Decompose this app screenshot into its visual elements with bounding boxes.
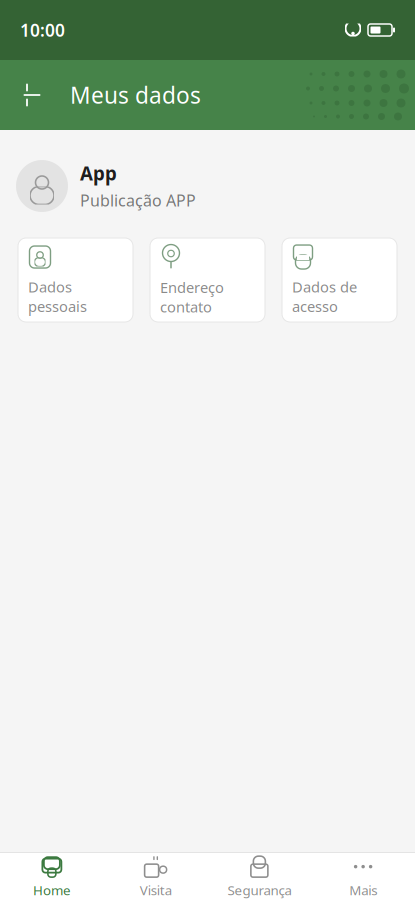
staticText: Endereço contato <box>160 277 224 316</box>
staticText: Segurança <box>227 881 291 899</box>
staticText: Dados de acesso <box>292 277 357 316</box>
staticText: Dados pessoais <box>28 277 87 316</box>
staticText: 10:00 <box>20 18 65 41</box>
staticText: Mais <box>349 881 377 899</box>
button[interactable]: Mais <box>311 848 415 900</box>
button[interactable]: Endereço contato <box>150 238 265 322</box>
staticText: Publicação APP <box>80 190 196 211</box>
staticText: Visita <box>140 881 172 899</box>
button[interactable]: Visita <box>104 848 208 900</box>
button[interactable]: Segurança <box>207 848 311 900</box>
staticText: Meus dados <box>70 80 201 110</box>
button[interactable]: Dados pessoais <box>18 238 133 322</box>
button[interactable]: Home <box>0 848 104 900</box>
staticText: Home <box>33 881 71 899</box>
button[interactable]: Voltar <box>10 73 54 117</box>
button[interactable]: Dados de acesso <box>282 238 397 322</box>
staticText: App <box>80 161 117 186</box>
